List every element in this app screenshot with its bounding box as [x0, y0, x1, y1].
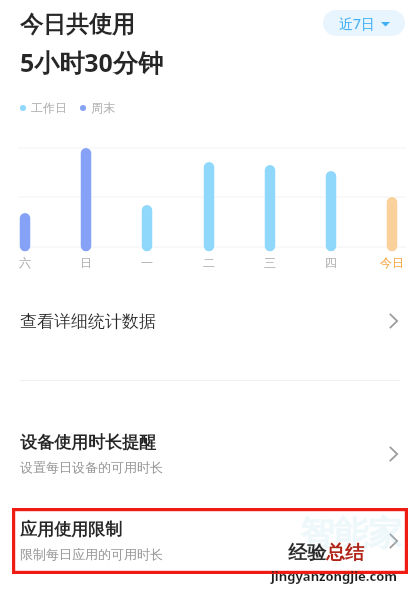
button[interactable]: 设备使用时长提醒: [0, 423, 420, 485]
other: Open: [389, 446, 398, 462]
staticText: 设备使用时长提醒: [20, 432, 156, 453]
staticText: 工作日: [31, 100, 67, 115]
staticText: 日: [80, 255, 92, 270]
staticText: 四: [325, 255, 337, 270]
staticText: 智能家: [300, 512, 402, 555]
staticText: 周末: [91, 100, 115, 115]
staticText: 二: [203, 255, 215, 270]
staticText: jingyanzongjie.com: [271, 567, 397, 585]
staticText: 查看详细统计数据: [20, 311, 156, 332]
staticText: 5小时30分钟: [20, 45, 163, 79]
staticText: 总结: [326, 541, 364, 565]
staticText: 今日: [380, 255, 404, 270]
staticText: 近7日: [339, 14, 376, 33]
staticText: 限制每日应用的可用时长: [20, 546, 163, 562]
staticText: 设置每日设备的可用时长: [20, 459, 163, 475]
staticText: 今日共使用: [20, 10, 135, 39]
staticText: 三: [264, 255, 276, 270]
button[interactable]: 查看详细统计数据: [0, 293, 420, 349]
other: Open: [389, 313, 398, 329]
other: Open: [389, 533, 398, 549]
staticText: 经验: [288, 541, 326, 565]
button[interactable]: 应用使用限制: [0, 508, 420, 574]
staticText: 六: [19, 255, 31, 270]
staticText: 一: [141, 255, 153, 270]
button[interactable]: 近7日: [323, 10, 405, 36]
staticText: 应用使用限制: [20, 519, 122, 540]
